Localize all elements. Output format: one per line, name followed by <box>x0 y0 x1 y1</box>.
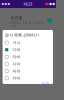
staticText: 다라 <box>13 47 21 52</box>
staticText: 2024년 3월 문서 목록입니다 <box>10 21 44 28</box>
staticText: 보관함 <box>10 15 22 20</box>
staticText: 가나 <box>13 40 21 45</box>
staticText: 마바 <box>13 54 21 59</box>
button[interactable]: 다라 <box>3 46 53 53</box>
button[interactable]: 자차 <box>3 67 53 75</box>
button[interactable]: 카타 <box>3 75 53 82</box>
button[interactable]: 편집 <box>42 82 50 87</box>
button[interactable]: Status <box>47 18 52 23</box>
button[interactable]: 사아 <box>3 60 53 67</box>
button[interactable]: 마바 <box>3 53 53 60</box>
button[interactable]: 가나 <box>3 39 53 46</box>
staticText: 카타 <box>13 76 21 81</box>
staticText: 14:23 <box>23 1 32 7</box>
staticText: 문서 목록 선택하기 <box>5 33 39 37</box>
staticText: 자차 <box>13 69 21 73</box>
staticText: 사아 <box>13 61 21 66</box>
staticText: 편집 <box>42 82 50 87</box>
